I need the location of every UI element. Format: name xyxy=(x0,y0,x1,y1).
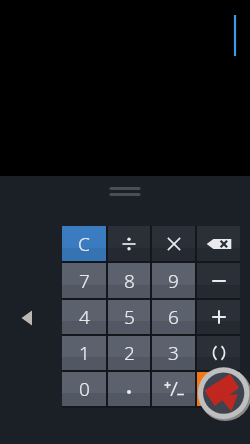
button[interactable] xyxy=(152,372,195,406)
button[interactable] xyxy=(108,226,150,261)
button[interactable]: Back xyxy=(16,305,38,331)
button[interactable]: C xyxy=(62,226,106,261)
button[interactable]: 1 xyxy=(62,336,106,370)
staticText: 5 xyxy=(124,304,135,330)
button[interactable]: Resize keypad xyxy=(109,184,141,198)
button[interactable] xyxy=(152,226,195,261)
button[interactable]: 3 xyxy=(152,336,195,370)
staticText: 7 xyxy=(79,268,90,294)
button[interactable] xyxy=(197,336,240,370)
staticText: 8 xyxy=(124,268,135,294)
button[interactable]: Equals xyxy=(197,372,240,406)
staticText: 0 xyxy=(79,376,90,402)
button[interactable] xyxy=(0,0,250,176)
button[interactable]: 0 xyxy=(62,372,106,406)
button[interactable]: 8 xyxy=(108,263,150,298)
button[interactable]: 2 xyxy=(108,336,150,370)
staticText: 3 xyxy=(168,340,179,366)
staticText: C xyxy=(78,231,90,257)
button[interactable]: 7 xyxy=(62,263,106,298)
staticText: 6 xyxy=(168,304,179,330)
button[interactable]: 4 xyxy=(62,300,106,334)
button[interactable]: 9 xyxy=(152,263,195,298)
staticText: 1 xyxy=(79,340,90,366)
button[interactable] xyxy=(108,372,150,406)
button[interactable]: 6 xyxy=(152,300,195,334)
staticText: 2 xyxy=(124,340,135,366)
button[interactable]: 5 xyxy=(108,300,150,334)
staticText: 9 xyxy=(168,268,179,294)
button[interactable]: Backspace xyxy=(197,226,240,261)
button[interactable] xyxy=(197,300,240,334)
button[interactable] xyxy=(197,263,240,298)
staticText: 4 xyxy=(79,304,90,330)
